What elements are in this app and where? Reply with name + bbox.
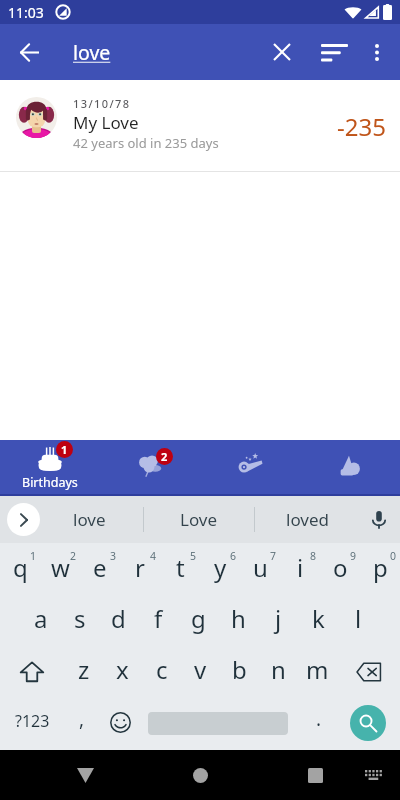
- staticText: ,: [79, 706, 85, 732]
- staticText: b: [232, 653, 247, 686]
- button[interactable]: o: [320, 543, 360, 594]
- button[interactable]: Love: [154, 496, 244, 543]
- button[interactable]: Back: [5, 28, 53, 76]
- staticText: 2: [161, 449, 168, 464]
- button[interactable]: Birthdays: [0, 440, 100, 496]
- button[interactable]: y: [200, 543, 240, 594]
- button[interactable]: Search: [350, 705, 386, 741]
- button[interactable]: Tab: [300, 440, 400, 496]
- staticText: x: [116, 653, 129, 686]
- staticText: love: [73, 508, 106, 531]
- staticText: 8: [310, 549, 317, 563]
- staticText: 9: [350, 549, 357, 563]
- button[interactable]: Tab: [200, 440, 300, 496]
- staticText: z: [78, 653, 90, 686]
- staticText: j: [275, 602, 282, 635]
- staticText: v: [194, 653, 207, 686]
- button[interactable]: f: [138, 594, 178, 645]
- button[interactable]: d: [99, 594, 138, 645]
- button[interactable]: Tab: [100, 440, 200, 496]
- button[interactable]: l: [338, 594, 378, 645]
- button[interactable]: a: [21, 594, 60, 645]
- button[interactable]: v: [181, 645, 220, 696]
- button[interactable]: i: [280, 543, 320, 594]
- button[interactable]: q: [0, 543, 40, 594]
- button[interactable]: love: [44, 496, 134, 543]
- button[interactable]: b: [220, 645, 259, 696]
- button[interactable]: m: [298, 645, 337, 696]
- staticText: l: [355, 602, 362, 635]
- staticText: Birthdays: [22, 474, 78, 491]
- staticText: love: [73, 39, 111, 66]
- button[interactable]: loved: [263, 496, 353, 543]
- staticText: p: [373, 551, 388, 584]
- staticText: 2: [70, 549, 77, 563]
- staticText: s: [74, 602, 86, 635]
- button[interactable]: Sort: [310, 28, 358, 76]
- staticText: k: [312, 602, 325, 635]
- button[interactable]: Back: [65, 755, 105, 795]
- staticText: 7: [270, 549, 277, 563]
- button[interactable]: s: [60, 594, 99, 645]
- staticText: 3: [110, 549, 117, 563]
- button[interactable]: t: [160, 543, 200, 594]
- button[interactable]: h: [218, 594, 258, 645]
- staticText: 5: [190, 549, 197, 563]
- button[interactable]: 13/10/78: [0, 80, 400, 171]
- button[interactable]: More suggestions: [7, 503, 40, 536]
- button[interactable]: Clear search: [258, 28, 306, 76]
- button[interactable]: k: [298, 594, 338, 645]
- staticText: Love: [180, 508, 218, 531]
- button[interactable]: e: [80, 543, 120, 594]
- button[interactable]: w: [40, 543, 80, 594]
- button[interactable]: n: [259, 645, 298, 696]
- button[interactable]: c: [142, 645, 181, 696]
- button[interactable]: More options: [353, 28, 400, 76]
- staticText: t: [176, 551, 185, 584]
- button[interactable]: p: [360, 543, 400, 594]
- staticText: i: [297, 551, 304, 584]
- button[interactable]: x: [103, 645, 142, 696]
- staticText: 1: [61, 442, 68, 457]
- staticText: r: [135, 551, 145, 584]
- button[interactable]: .: [300, 696, 338, 750]
- staticText: o: [333, 551, 348, 584]
- staticText: h: [231, 602, 246, 635]
- staticText: a: [34, 602, 48, 635]
- button[interactable]: Home: [180, 755, 220, 795]
- staticText: -235: [337, 110, 386, 143]
- button[interactable]: Recent apps: [295, 755, 335, 795]
- staticText: e: [93, 551, 107, 584]
- button[interactable]: r: [120, 543, 160, 594]
- staticText: 11:03: [8, 3, 44, 22]
- staticText: 42 years old in 235 days: [73, 134, 219, 152]
- staticText: q: [13, 551, 28, 584]
- staticText: 1: [30, 549, 37, 563]
- staticText: c: [156, 653, 168, 686]
- staticText: My Love: [73, 111, 139, 134]
- button[interactable]: g: [178, 594, 218, 645]
- staticText: y: [214, 551, 227, 584]
- button[interactable]: Backspace: [337, 645, 400, 696]
- button[interactable]: u: [240, 543, 280, 594]
- staticText: m: [306, 653, 329, 686]
- button[interactable]: j: [258, 594, 298, 645]
- button[interactable]: Emoji: [98, 696, 143, 750]
- staticText: n: [271, 653, 286, 686]
- staticText: loved: [286, 508, 330, 531]
- button[interactable]: Shift: [0, 645, 64, 696]
- button[interactable]: Space: [143, 696, 293, 750]
- button[interactable]: z: [64, 645, 103, 696]
- button[interactable]: Voice input: [362, 503, 396, 537]
- button[interactable]: ?123: [0, 696, 62, 750]
- staticText: f: [154, 602, 163, 635]
- button[interactable]: Switch keyboard: [353, 755, 393, 795]
- staticText: 6: [230, 549, 237, 563]
- staticText: d: [111, 602, 126, 635]
- staticText: w: [51, 551, 70, 584]
- staticText: 13/10/78: [73, 96, 131, 111]
- staticText: .: [316, 706, 322, 732]
- staticText: u: [253, 551, 268, 584]
- staticText: ?123: [15, 710, 50, 732]
- button[interactable]: ,: [62, 696, 94, 750]
